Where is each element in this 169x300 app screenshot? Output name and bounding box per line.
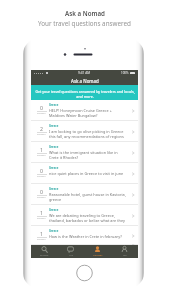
staticText: answers bbox=[37, 238, 46, 241]
staticText: Nomads bbox=[93, 253, 103, 256]
button[interactable]: 0 bbox=[31, 163, 138, 184]
button[interactable]: Browse bbox=[31, 245, 57, 258]
staticText: Greece bbox=[49, 124, 59, 128]
staticText: 1 bbox=[40, 146, 43, 153]
button[interactable]: Ask bbox=[57, 245, 84, 258]
staticText: Maldives Water Bungalow? bbox=[49, 113, 98, 118]
staticText: Greece bbox=[49, 187, 59, 191]
staticText: Greece bbox=[49, 103, 59, 107]
button[interactable]: Me bbox=[111, 245, 138, 258]
staticText: Browse bbox=[40, 253, 49, 256]
staticText: this fall, any recommendations of region… bbox=[49, 134, 124, 139]
staticText: I am looking to go olive picking in Gree… bbox=[49, 129, 124, 134]
staticText: 9:41 AM bbox=[78, 71, 91, 75]
staticText: Crete it Rhodes? bbox=[49, 155, 79, 160]
button[interactable]: 1 bbox=[31, 142, 138, 163]
staticText: 100% bbox=[121, 71, 129, 75]
staticText: answers bbox=[37, 133, 46, 136]
staticText: 1 bbox=[40, 230, 43, 237]
staticText: Reasonable hotel, guest house in Kastori… bbox=[49, 192, 126, 197]
staticText: Greece bbox=[49, 208, 59, 212]
staticText: We are debating traveling to Greece, bbox=[49, 213, 115, 218]
button[interactable]: 0 bbox=[31, 184, 138, 205]
button[interactable]: Get your travel questions answered by tr… bbox=[31, 85, 138, 100]
staticText: 0 bbox=[40, 167, 43, 174]
staticText: What is the immigrant situation like in bbox=[49, 150, 118, 155]
button[interactable]: 1 bbox=[31, 226, 138, 245]
button[interactable]: 1 bbox=[31, 205, 138, 226]
staticText: How is the Weather in Crete in february? bbox=[49, 234, 122, 239]
staticText: Me bbox=[123, 253, 127, 256]
staticText: 2 bbox=[40, 125, 43, 132]
staticText: Ask a Nomad bbox=[71, 78, 99, 84]
button[interactable]: Nomads bbox=[84, 245, 111, 258]
staticText: answers bbox=[37, 217, 46, 220]
staticText: thailand, barbados or belize what are th… bbox=[49, 218, 125, 223]
staticText: 1 bbox=[40, 209, 43, 216]
staticText: Ask a Nomad bbox=[65, 9, 105, 17]
staticText: Your travel questions answered bbox=[38, 19, 131, 28]
staticText: answers bbox=[37, 196, 46, 199]
staticText: 0 bbox=[40, 188, 43, 195]
staticText: Greece bbox=[49, 145, 59, 149]
staticText: HELP! Honeymoon Cruise Greece + bbox=[49, 108, 112, 113]
staticText: greece bbox=[49, 197, 62, 202]
button[interactable]: 2 bbox=[31, 121, 138, 142]
staticText: Ask bbox=[69, 253, 73, 256]
staticText: answers bbox=[37, 175, 46, 178]
staticText: answers bbox=[37, 112, 46, 115]
staticText: Greece bbox=[49, 166, 59, 170]
staticText: Greece bbox=[49, 229, 59, 233]
staticText: 0 bbox=[40, 104, 43, 111]
staticText: Get your travel questions answered by tr… bbox=[35, 89, 135, 99]
staticText: answers bbox=[37, 154, 46, 157]
button[interactable]: 0 bbox=[31, 100, 138, 121]
staticText: nice quiet places in Greece to visit in … bbox=[49, 171, 124, 176]
